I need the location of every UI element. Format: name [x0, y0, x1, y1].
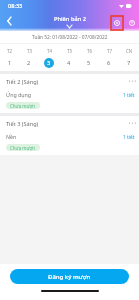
staticText: 5 [87, 59, 91, 67]
button[interactable]: CN [119, 44, 139, 71]
button[interactable]: Tiết 2 (Sáng) [0, 74, 139, 113]
button[interactable]: T2 [0, 44, 19, 71]
staticText: T6 [87, 48, 92, 54]
staticText: CN [126, 48, 133, 54]
button[interactable]: More options [127, 118, 137, 128]
button[interactable]: Đăng ký mượn [10, 269, 129, 284]
button[interactable]: Back [2, 14, 15, 27]
staticText: T4 [47, 48, 52, 54]
button[interactable]: Expand [67, 25, 72, 28]
staticText: 08:33 [8, 2, 23, 10]
staticText: T5 [67, 48, 72, 54]
staticText: 1 tiết [123, 134, 135, 141]
button[interactable]: More options [127, 76, 137, 86]
staticText: T2 [7, 48, 12, 54]
staticText: 7 [127, 59, 131, 67]
staticText: Tiết 3 (Sáng) [6, 120, 39, 128]
staticText: T7 [107, 48, 112, 54]
staticText: Chưa mượn [10, 103, 36, 109]
button[interactable]: T5 [59, 44, 79, 71]
staticText: Phiên bản 2 [54, 15, 86, 23]
staticText: Tiết 2 (Sáng) [6, 78, 39, 86]
staticText: Tuần 52: 01/08/2022 - 07/08/2022 [32, 34, 108, 41]
staticText: 6 [107, 59, 111, 67]
staticText: 3 [47, 59, 51, 67]
staticText: 2 [27, 59, 31, 67]
button[interactable]: Tiết 3 (Sáng) [0, 116, 139, 155]
button[interactable]: T7 [99, 44, 119, 71]
button[interactable]: T3 [19, 44, 39, 71]
button[interactable]: Power [126, 16, 137, 29]
staticText: Ứng dụng [6, 91, 32, 98]
staticText: Nền [6, 133, 17, 140]
staticText: Đăng ký mượn [48, 273, 91, 281]
button[interactable]: T4 [39, 44, 59, 71]
button[interactable]: T6 [79, 44, 99, 71]
staticText: 1 tiết [123, 92, 135, 99]
staticText: 1 [8, 59, 12, 67]
button[interactable]: Switch camera [111, 16, 123, 30]
staticText: 4 [67, 59, 71, 67]
staticText: T3 [27, 48, 32, 54]
staticText: Chưa mượn [10, 145, 36, 151]
